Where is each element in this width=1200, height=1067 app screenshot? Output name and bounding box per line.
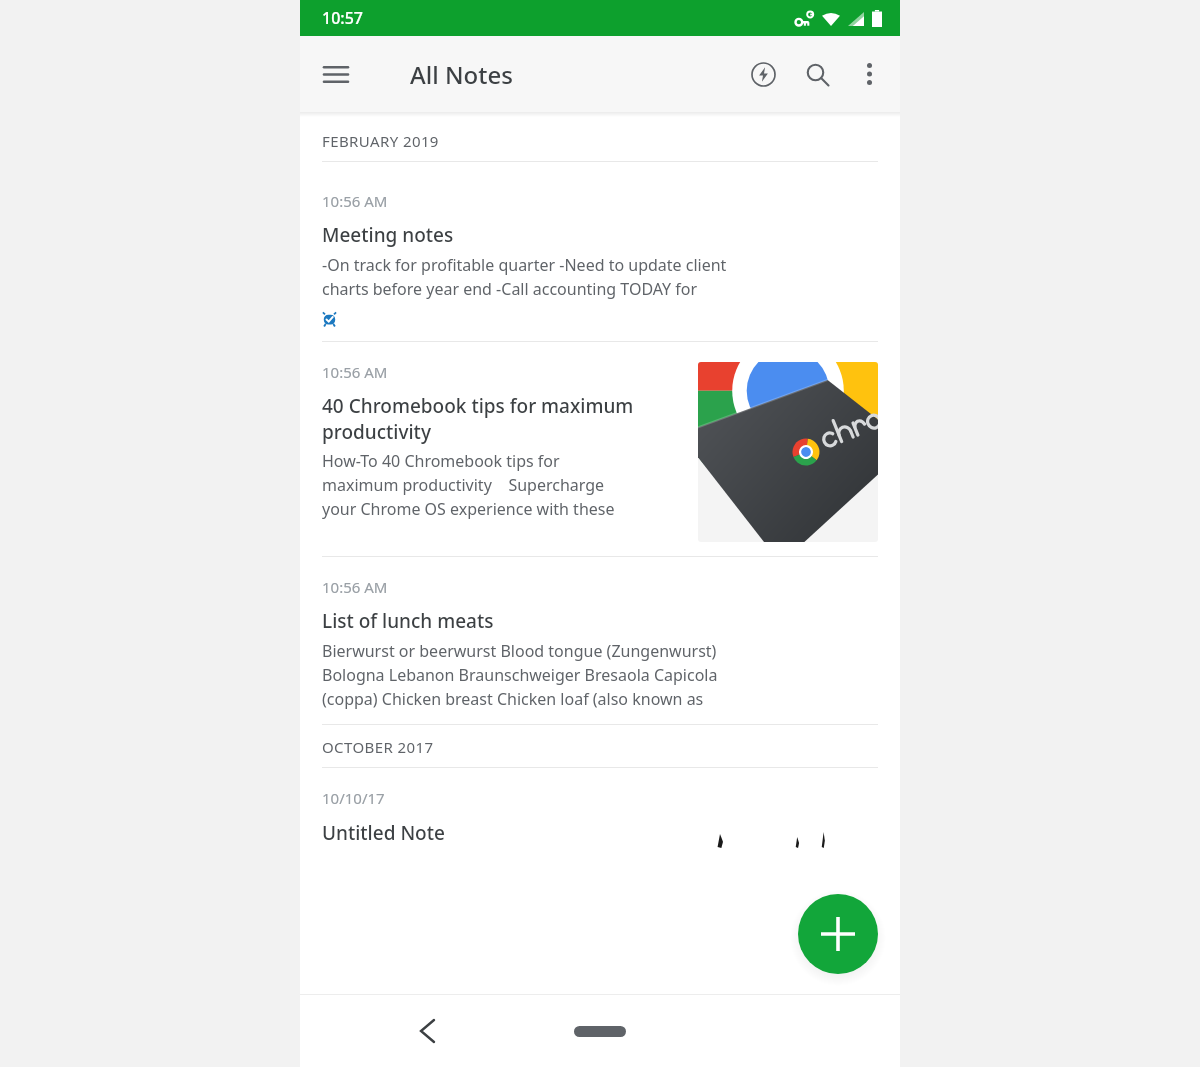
staticText: 40 Chromebook tips for maximum productiv… — [322, 393, 634, 444]
button[interactable]: Back — [400, 1004, 454, 1058]
staticText: Untitled Note — [322, 820, 445, 846]
staticText: 10:56 AM — [322, 362, 388, 382]
staticText: 10:56 AM — [322, 577, 388, 597]
button[interactable]: Open navigation menu — [308, 46, 364, 102]
button[interactable]: 10/10/17 — [300, 768, 900, 846]
staticText: FEBRUARY 2019 — [322, 131, 439, 151]
staticText: How-To 40 Chromebook tips for maximum pr… — [322, 450, 615, 520]
button[interactable]: More options — [844, 49, 894, 99]
button[interactable]: Home — [568, 1018, 632, 1044]
staticText: All Notes — [410, 58, 513, 91]
staticText: Meeting notes — [322, 222, 454, 248]
button[interactable]: Search — [790, 47, 844, 101]
button[interactable]: Create new note — [798, 894, 878, 974]
staticText: 10:56 AM — [322, 191, 388, 211]
staticText: OCTOBER 2017 — [322, 737, 434, 757]
staticText: 10/10/17 — [322, 788, 385, 808]
staticText: 10:57 — [322, 7, 363, 29]
button[interactable]: 10:56 AM — [300, 162, 900, 341]
staticText: -On track for profitable quarter -Need t… — [322, 254, 727, 300]
button[interactable]: 10:56 AM — [300, 557, 900, 724]
staticText: List of lunch meats — [322, 608, 494, 634]
button[interactable]: 10:56 AM — [300, 342, 900, 556]
button[interactable]: Quick note — [736, 47, 790, 101]
staticText: Bierwurst or beerwurst Blood tongue (Zun… — [322, 640, 718, 710]
